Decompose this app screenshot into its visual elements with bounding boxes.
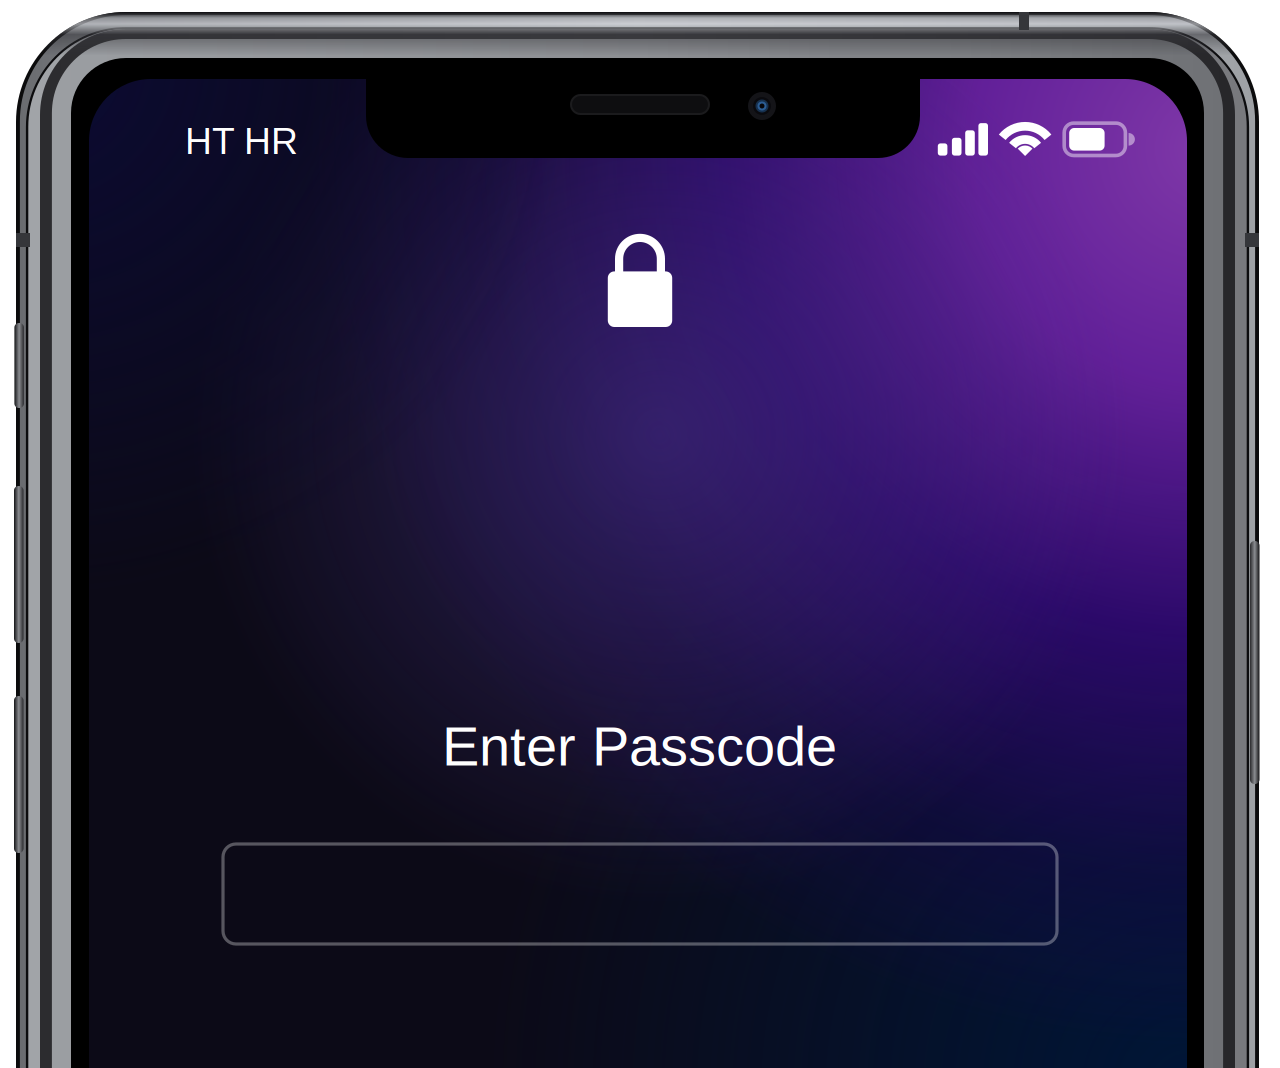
staticText: HT HR xyxy=(185,120,298,162)
staticText: Enter Passcode xyxy=(442,715,837,777)
